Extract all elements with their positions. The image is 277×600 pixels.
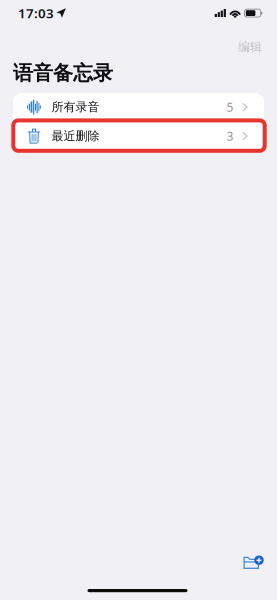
button[interactable]: 所有录音 [13,93,264,121]
staticText: 3 [226,128,233,144]
staticText: 编辑 [238,40,262,54]
staticText: 语音备忘录 [13,61,113,85]
staticText: 最近删除 [51,129,99,143]
button[interactable]: New Folder [237,549,267,576]
staticText: 5 [226,99,233,115]
staticText: 17:03 [18,4,54,22]
button[interactable]: 编辑 [233,35,267,59]
button[interactable]: 最近删除 [13,122,264,150]
staticText: 所有录音 [51,100,99,114]
